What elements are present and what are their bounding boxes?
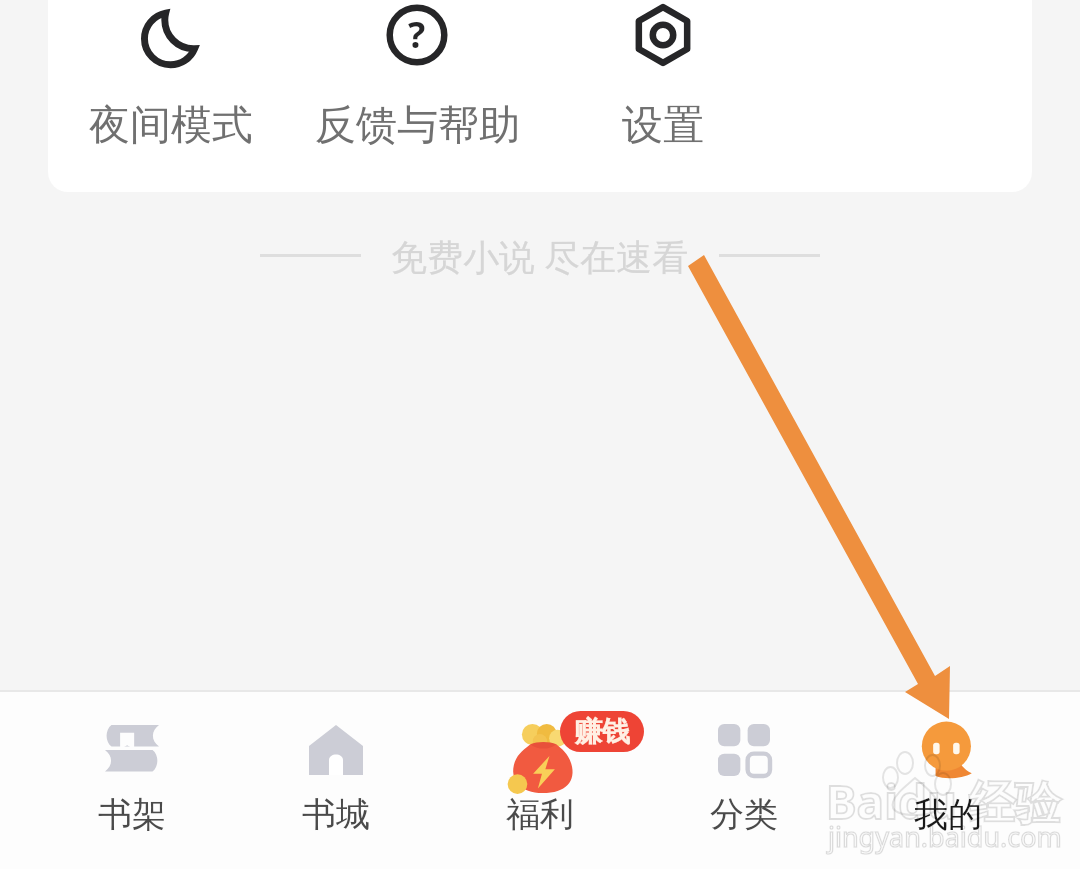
staticText: 反馈与帮助 [315,100,520,152]
button[interactable]: 我的 [846,692,1050,836]
staticText: 书架 [98,793,166,836]
button[interactable]: 设置 [540,0,786,152]
staticText: ? [408,10,426,59]
staticText: 分类 [710,793,778,836]
button[interactable]: 分类 [642,692,846,836]
button[interactable]: 夜间模式 [48,0,294,152]
staticText: 赚钱 [574,714,630,749]
button[interactable]: 书架 [30,692,234,836]
button[interactable]: 福利 [438,692,642,836]
staticText: 免费小说 尽在速看 [391,232,689,278]
button[interactable]: 书城 [234,692,438,836]
staticText: 福利 [506,793,574,836]
staticText: 夜间模式 [89,100,253,152]
staticText: 我的 [914,793,982,836]
staticText: 设置 [622,100,704,152]
button[interactable]: 反馈与帮助 [294,0,540,152]
staticText: 书城 [302,793,370,836]
